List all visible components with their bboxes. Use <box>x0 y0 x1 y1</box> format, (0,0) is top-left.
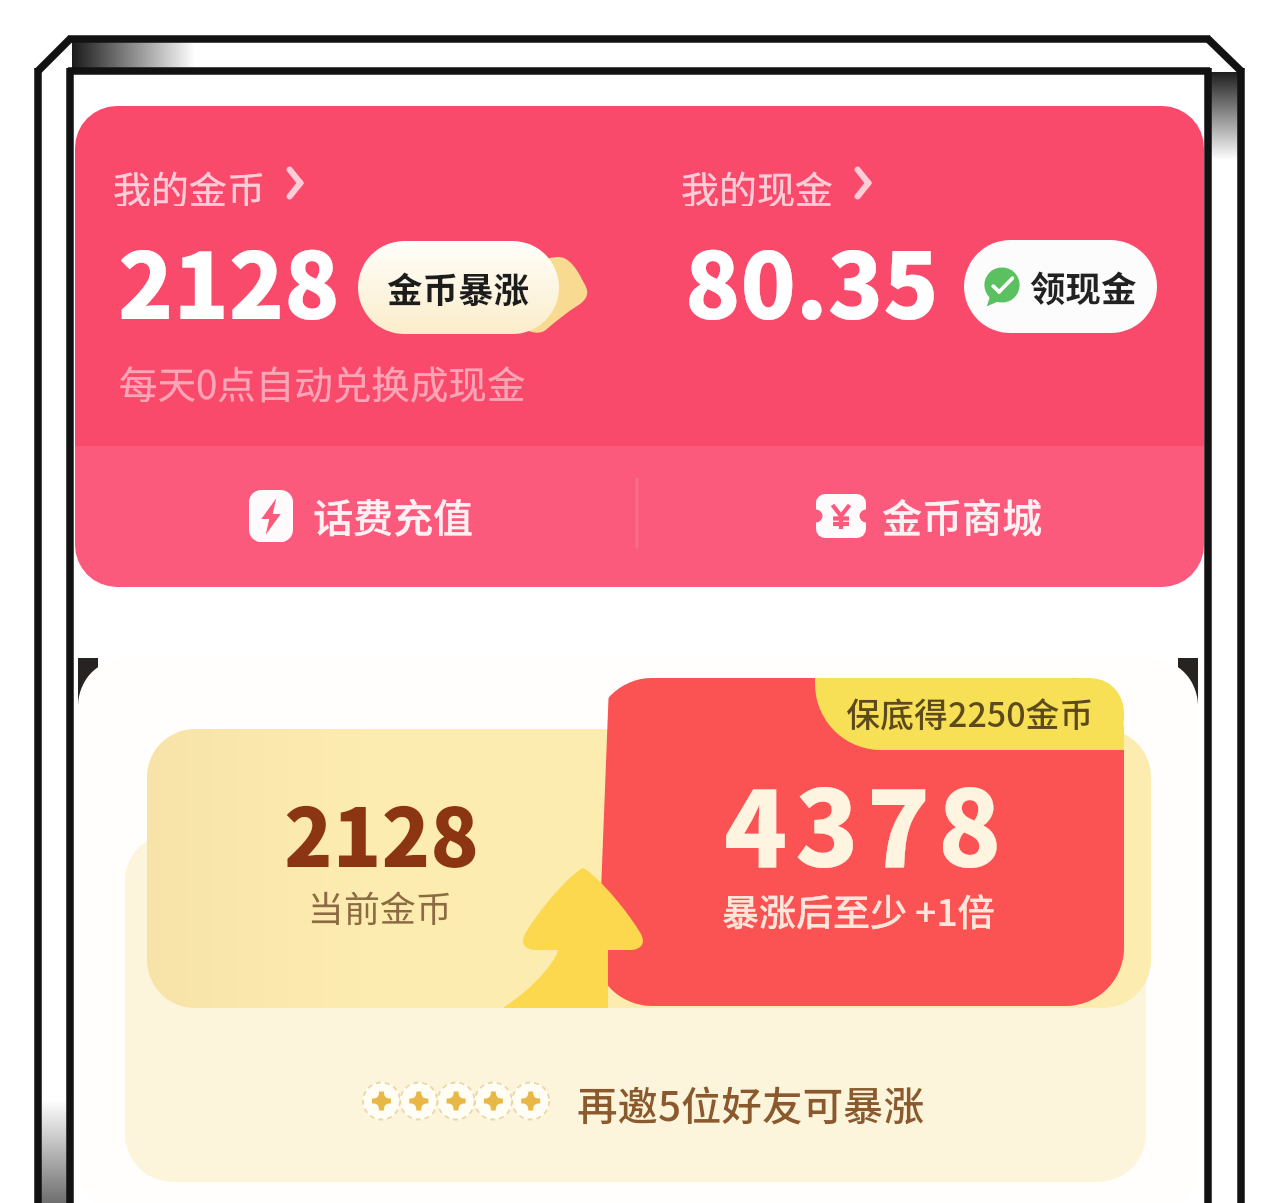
staticText: 4378 <box>724 746 1010 897</box>
staticText: 暴涨后至少 +1倍 <box>722 883 995 937</box>
button[interactable]: 保底得2250金币 <box>846 688 1094 737</box>
button[interactable]: 我的现金 <box>681 160 872 206</box>
staticText: 保底得2250金币 <box>846 688 1094 737</box>
staticText: 当前金币 <box>308 880 453 932</box>
staticText: 80.35 <box>685 213 939 345</box>
staticText: 领现金 <box>1030 261 1137 312</box>
staticText: 我的现金 <box>681 160 834 206</box>
staticText: 再邀5位好友可暴涨 <box>577 1074 925 1133</box>
staticText: 金币暴涨 <box>387 262 530 313</box>
staticText: 金币商城 <box>882 487 1042 545</box>
staticText: 2128 <box>284 774 479 890</box>
button[interactable]: 我的金币 <box>113 160 304 206</box>
staticText: 我的金币 <box>113 160 266 206</box>
button[interactable]: 领现金 <box>964 240 1157 333</box>
staticText: 话费充值 <box>313 487 473 545</box>
staticText: 2128 <box>118 213 340 345</box>
button[interactable]: 金币暴涨 <box>358 241 559 334</box>
button[interactable]: 再邀5位好友可暴涨 <box>577 1074 925 1133</box>
button[interactable]: 话费充值 <box>249 484 479 548</box>
staticText: 每天0点自动兑换成现金 <box>119 354 526 410</box>
button[interactable]: 金币商城 <box>816 484 1046 548</box>
